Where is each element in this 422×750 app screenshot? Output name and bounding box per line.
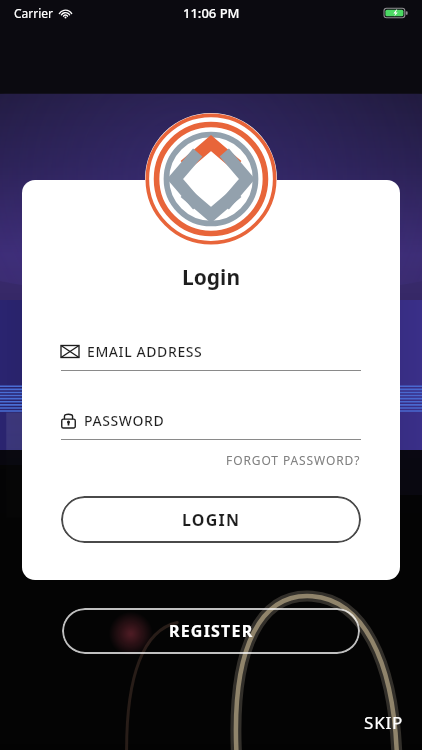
button[interactable]: FORGOT PASSWORD?: [226, 450, 361, 470]
staticText: EMAIL ADDRESS: [87, 342, 203, 361]
staticText: Login: [61, 263, 361, 292]
staticText: LOGIN: [182, 509, 241, 531]
staticText: 11:06 PM: [183, 4, 240, 22]
staticText: Carrier: [14, 5, 54, 21]
button[interactable]: REGISTER: [62, 608, 360, 654]
staticText: PASSWORD: [84, 411, 165, 430]
button[interactable]: SKIP: [364, 711, 422, 750]
button[interactable]: LOGIN: [61, 496, 361, 543]
staticText: REGISTER: [169, 620, 254, 642]
